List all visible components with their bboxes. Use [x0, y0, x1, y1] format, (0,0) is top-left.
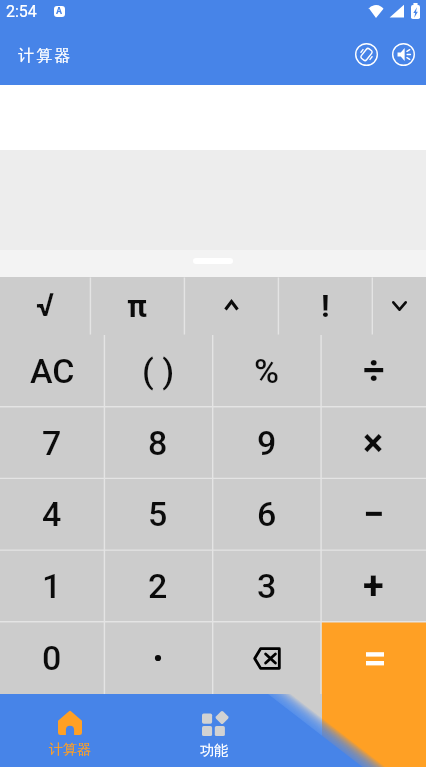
button[interactable]: 计算器: [0, 694, 139, 767]
staticText: +: [363, 564, 384, 609]
staticText: 2: [148, 566, 168, 606]
staticText: ( ): [142, 351, 175, 391]
button[interactable]: 2: [104, 550, 212, 622]
button[interactable]: [321, 622, 426, 694]
button[interactable]: 3: [213, 550, 321, 622]
button[interactable]: 5: [104, 478, 212, 550]
button[interactable]: [184, 277, 278, 335]
button[interactable]: [104, 622, 212, 694]
button[interactable]: 6: [213, 478, 321, 550]
staticText: 1: [42, 566, 62, 606]
staticText: AC: [30, 351, 75, 391]
button[interactable]: 0: [0, 622, 104, 694]
staticText: 计算器: [18, 46, 73, 66]
button[interactable]: 1: [0, 550, 104, 622]
staticText: 2:54: [6, 2, 37, 21]
button[interactable]: 9: [213, 407, 321, 479]
staticText: ×: [363, 421, 384, 466]
button[interactable]: Vibration: [348, 36, 385, 73]
staticText: !: [321, 287, 330, 325]
button[interactable]: −: [321, 478, 426, 550]
button[interactable]: π: [90, 277, 184, 335]
button[interactable]: Expand: [372, 277, 426, 335]
staticText: 功能: [200, 742, 228, 760]
staticText: 计算器: [49, 741, 91, 759]
staticText: 9: [257, 423, 277, 463]
button[interactable]: +: [321, 550, 426, 622]
button[interactable]: ×: [321, 407, 426, 479]
button[interactable]: 4: [0, 478, 104, 550]
staticText: π: [127, 288, 148, 324]
button[interactable]: %: [213, 335, 321, 407]
staticText: −: [363, 492, 385, 537]
button[interactable]: ÷: [321, 335, 426, 407]
button[interactable]: 8: [104, 407, 212, 479]
staticText: 8: [148, 423, 168, 463]
staticText: 6: [257, 494, 277, 534]
button[interactable]: √: [0, 277, 90, 335]
staticText: %: [254, 351, 280, 391]
button[interactable]: 功能: [139, 694, 288, 767]
staticText: 3: [257, 566, 277, 606]
staticText: √: [36, 286, 54, 324]
button[interactable]: Sound: [385, 36, 422, 73]
staticText: 4: [42, 494, 62, 534]
staticText: ÷: [363, 349, 385, 394]
staticText: 0: [42, 638, 62, 678]
button[interactable]: ( ): [104, 335, 212, 407]
button[interactable]: Equals: [322, 623, 426, 767]
staticText: 7: [42, 423, 62, 463]
button[interactable]: Delete: [213, 622, 321, 694]
button[interactable]: AC: [0, 335, 104, 407]
staticText: A: [56, 6, 63, 17]
button[interactable]: 7: [0, 407, 104, 479]
staticText: 5: [148, 494, 168, 534]
button[interactable]: !: [278, 277, 372, 335]
